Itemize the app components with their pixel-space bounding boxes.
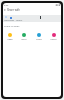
staticText: Messages · recent bbox=[4, 19, 23, 22]
button[interactable]: Keep bbox=[3, 33, 17, 41]
staticText: Keep bbox=[7, 38, 13, 41]
button[interactable]: Navigate up bbox=[3, 6, 7, 13]
button[interactable]: Docs bbox=[17, 33, 31, 41]
staticText: Share to apps bbox=[4, 24, 20, 27]
button[interactable]: More options bbox=[3, 15, 61, 22]
staticText: 9:30 bbox=[4, 4, 9, 7]
button[interactable]: Navigate up bbox=[3, 6, 61, 13]
staticText: Photo bbox=[50, 38, 57, 41]
staticText: Share with bbox=[7, 8, 20, 12]
staticText: Docs bbox=[21, 38, 27, 41]
button[interactable]: Photo bbox=[46, 33, 61, 41]
staticText: Drive bbox=[36, 38, 42, 41]
button[interactable]: Drive bbox=[31, 33, 46, 41]
